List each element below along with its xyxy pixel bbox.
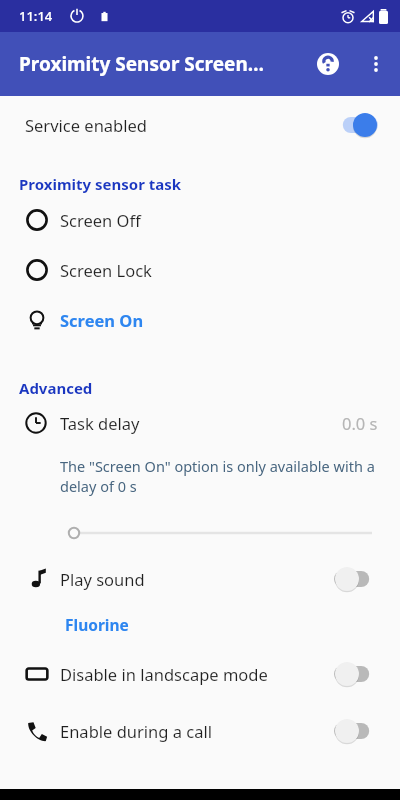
button[interactable]: Help — [304, 40, 352, 88]
button[interactable]: Off — [334, 661, 378, 687]
button[interactable]: Off — [334, 718, 378, 744]
staticText: Fluorine — [65, 614, 129, 635]
staticText: Proximity sensor task — [19, 174, 182, 194]
staticText: 11:14 — [19, 7, 53, 25]
button[interactable]: Enable during a call — [0, 718, 400, 758]
button[interactable]: On — [334, 112, 378, 138]
button[interactable]: Play sound — [0, 566, 400, 606]
staticText: Enable during a call — [60, 720, 212, 742]
staticText: The "Screen On" option is only available… — [60, 456, 384, 496]
button[interactable]: Screen Lock — [0, 258, 400, 308]
button[interactable]: Fluorine — [65, 614, 400, 635]
button[interactable]: Task delay — [0, 412, 400, 452]
button[interactable]: Disable in landscape mode — [0, 661, 400, 701]
staticText: Proximity Sensor Screen… — [19, 51, 264, 77]
button[interactable]: Screen Off — [0, 208, 400, 258]
staticText: Play sound — [60, 568, 145, 590]
staticText: Screen On — [60, 309, 144, 331]
staticText: Screen Lock — [60, 259, 152, 281]
staticText: Service enabled — [25, 114, 147, 136]
staticText: Disable in landscape mode — [60, 663, 268, 685]
button[interactable]: Screen On — [0, 308, 400, 358]
staticText: 0.0 s — [342, 412, 378, 434]
button[interactable]: Service enabled — [0, 96, 400, 154]
button[interactable]: More options — [352, 40, 400, 88]
staticText: Task delay — [60, 412, 140, 434]
button[interactable]: Off — [334, 566, 378, 592]
button[interactable] — [0, 522, 400, 544]
staticText: Screen Off — [60, 209, 141, 231]
staticText: Advanced — [19, 378, 93, 398]
